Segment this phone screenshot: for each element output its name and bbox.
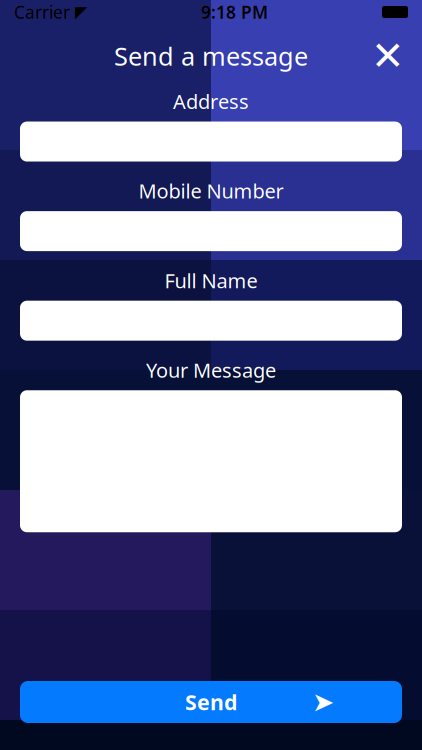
staticText: 9:18 PM bbox=[201, 0, 268, 23]
staticText: Send a message bbox=[114, 39, 308, 73]
button[interactable]: Full Name field bbox=[20, 301, 402, 341]
staticText: Mobile Number bbox=[138, 178, 283, 204]
button[interactable]: Your Message field bbox=[20, 390, 402, 532]
staticText: Full Name bbox=[164, 267, 257, 294]
staticText: Send bbox=[185, 688, 237, 716]
button[interactable]: Send bbox=[20, 681, 402, 723]
staticText: ➤ bbox=[312, 687, 334, 717]
staticText: Address bbox=[173, 88, 249, 115]
button[interactable]: Mobile Number field bbox=[20, 211, 402, 251]
staticText: ✕ bbox=[371, 33, 405, 79]
button[interactable]: Close bbox=[366, 34, 410, 78]
staticText: Your Message bbox=[146, 357, 276, 383]
staticText: Carrier bbox=[14, 0, 70, 23]
staticText: ◤ bbox=[75, 3, 87, 21]
button[interactable]: Address field bbox=[20, 122, 402, 162]
